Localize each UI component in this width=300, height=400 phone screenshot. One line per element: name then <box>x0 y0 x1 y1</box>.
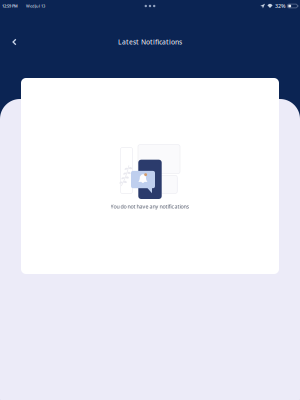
staticText: You do not have any notifications <box>110 203 189 210</box>
staticText: Latest Notifications <box>118 38 182 46</box>
staticText: Wed Jul 13 <box>26 3 45 9</box>
staticText: 32% <box>275 2 286 10</box>
button[interactable]: Back <box>0 30 26 54</box>
staticText: 12:59 PM <box>2 3 18 9</box>
